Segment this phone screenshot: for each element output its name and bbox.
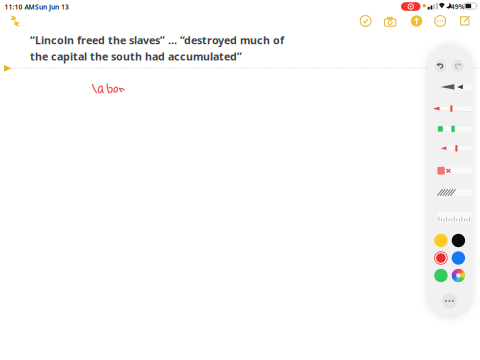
button[interactable]: More options <box>442 293 457 308</box>
button[interactable]: Pen <box>427 105 475 113</box>
button[interactable]: Colour <box>433 233 448 248</box>
staticText: 11:10 AM <box>4 2 34 11</box>
button[interactable]: Colour <box>433 250 448 265</box>
button[interactable]: Collapse sidebar <box>5 11 25 31</box>
button[interactable]: Lasso <box>427 188 475 196</box>
button[interactable]: Highlighter <box>427 125 475 133</box>
button[interactable]: Colour picker <box>451 268 466 283</box>
button[interactable]: Redo <box>452 60 464 72</box>
button[interactable]: Colour <box>451 233 466 248</box>
button[interactable]: Eraser <box>427 167 475 175</box>
staticText: 49% <box>451 2 465 11</box>
staticText: Sun Jun 13 <box>35 2 69 11</box>
button[interactable]: Done <box>356 11 376 31</box>
button[interactable]: Compose <box>455 11 475 31</box>
staticText: the capital the south had accumulated” <box>30 49 242 63</box>
button[interactable]: Colour <box>451 250 466 265</box>
button[interactable]: Pencil <box>427 144 475 152</box>
button[interactable]: Undo <box>434 60 446 72</box>
staticText: “Lincoln freed the slaves” ... “destroye… <box>30 33 284 47</box>
button[interactable]: More <box>430 11 450 31</box>
button[interactable]: Colour <box>433 268 448 283</box>
button[interactable]: Share <box>407 11 427 31</box>
button[interactable]: Fountain pen <box>427 83 475 91</box>
button[interactable]: Insert photo <box>380 11 400 31</box>
